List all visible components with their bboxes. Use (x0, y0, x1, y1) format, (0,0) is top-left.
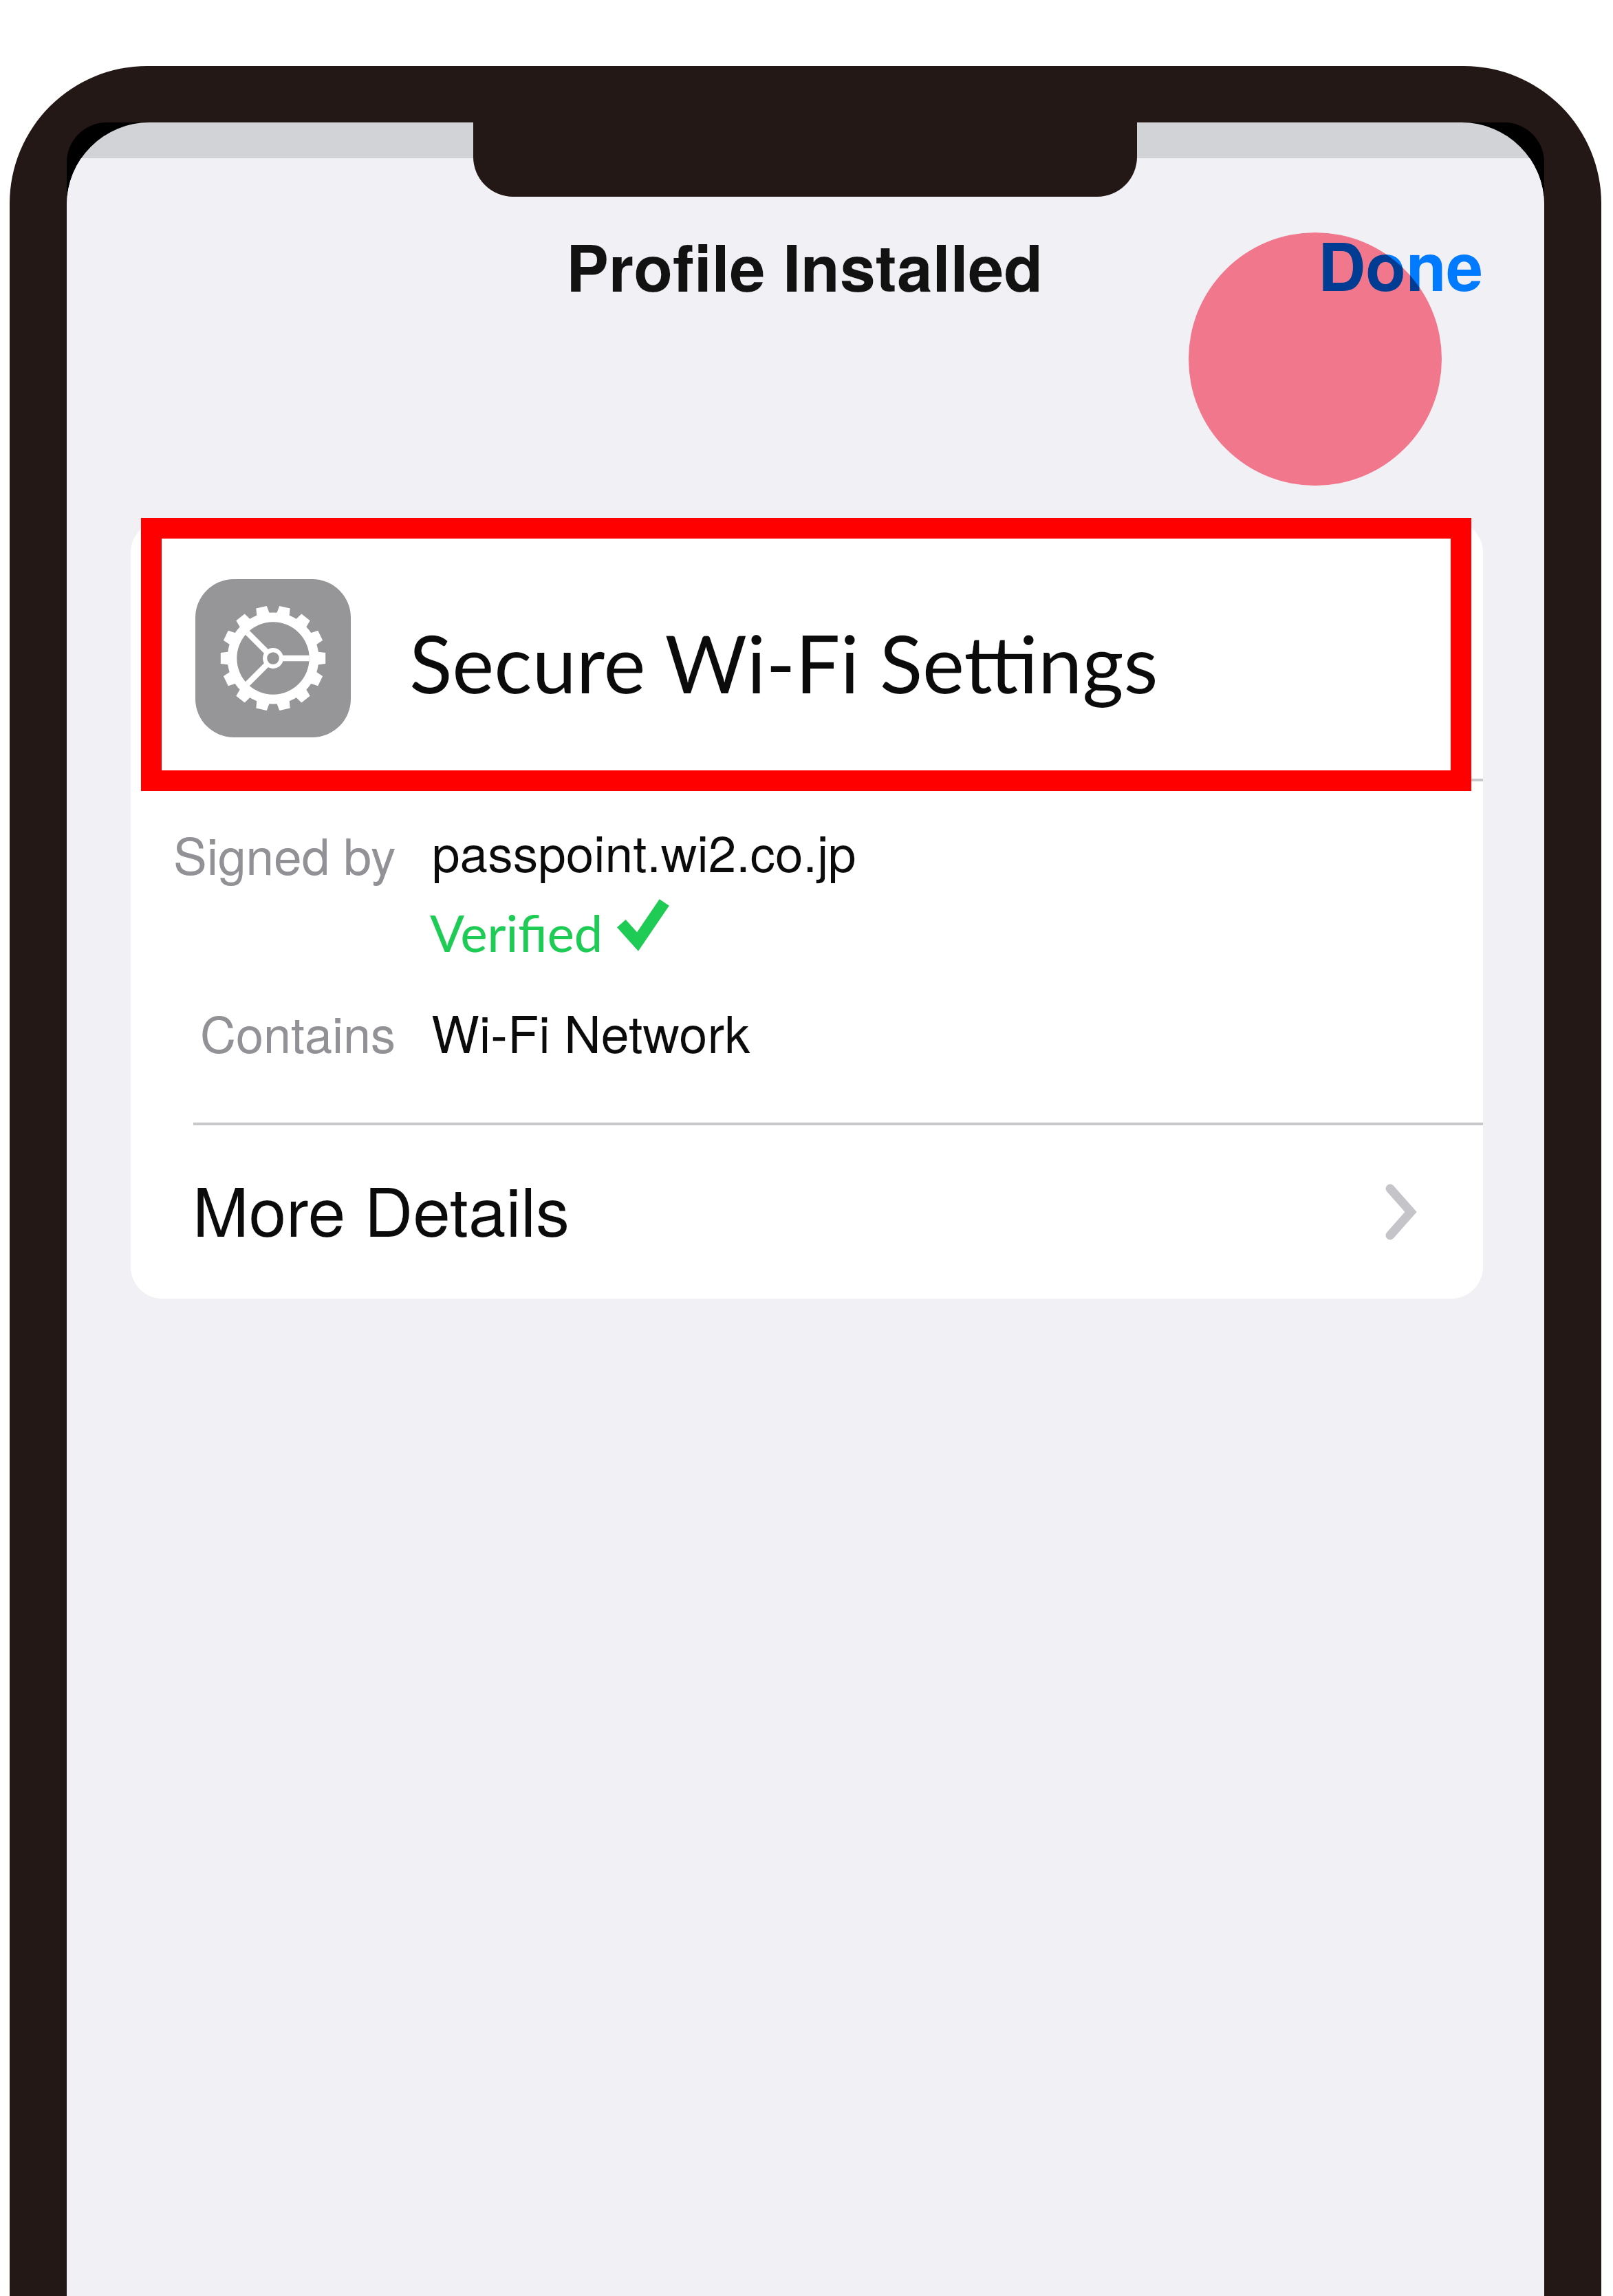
staticText: Wi-Fi Network (431, 995, 750, 1068)
staticText: Signed by (173, 817, 396, 889)
staticText: Contains (200, 996, 396, 1067)
staticText: Secure Wi-Fi Settings (409, 615, 1158, 711)
button[interactable]: Done (1293, 206, 1493, 316)
staticText: More Details (193, 1159, 570, 1255)
button[interactable]: More Details (131, 1126, 1483, 1299)
other: Profile icon (195, 579, 351, 737)
staticText: Verified (430, 902, 603, 963)
staticText: passpoint.wi2.co.jp (432, 814, 856, 887)
staticText: Profile Installed (566, 219, 1043, 311)
staticText: Done (1318, 217, 1483, 311)
button[interactable]: Profile icon (131, 521, 1483, 780)
